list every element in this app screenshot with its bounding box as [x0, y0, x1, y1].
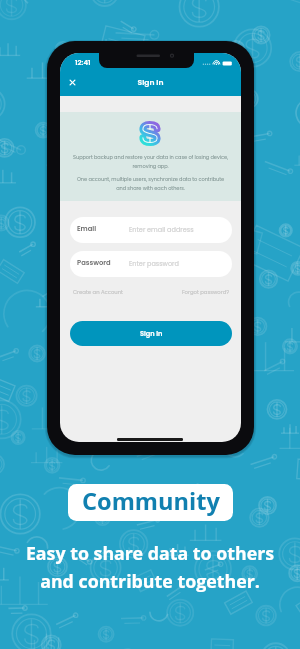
- button[interactable]: Community: [68, 484, 233, 521]
- button[interactable]: Email: [70, 217, 232, 243]
- staticText: Password: [77, 258, 127, 268]
- staticText: 12:41: [75, 58, 115, 68]
- staticText: Email: [77, 224, 117, 234]
- staticText: Forgot password?: [167, 288, 229, 295]
- button[interactable]: Create an Account: [73, 285, 135, 297]
- staticText: Community: [82, 485, 220, 517]
- staticText: Support backup and restore your data in …: [61, 154, 240, 170]
- button[interactable]: Forgot password?: [167, 285, 229, 297]
- button[interactable]: Close: [66, 76, 79, 89]
- button[interactable]: Sign In: [70, 321, 232, 346]
- staticText: Enter email address: [129, 225, 229, 234]
- staticText: Sign In: [140, 329, 163, 338]
- staticText: Enter password: [129, 259, 229, 268]
- staticText: One account, multiple users, synchronize…: [61, 176, 240, 192]
- staticText: Easy to share data to others and contrib…: [10, 541, 290, 593]
- staticText: Sign In: [60, 77, 241, 88]
- staticText: Create an Account: [73, 288, 135, 295]
- button[interactable]: Password: [70, 251, 232, 277]
